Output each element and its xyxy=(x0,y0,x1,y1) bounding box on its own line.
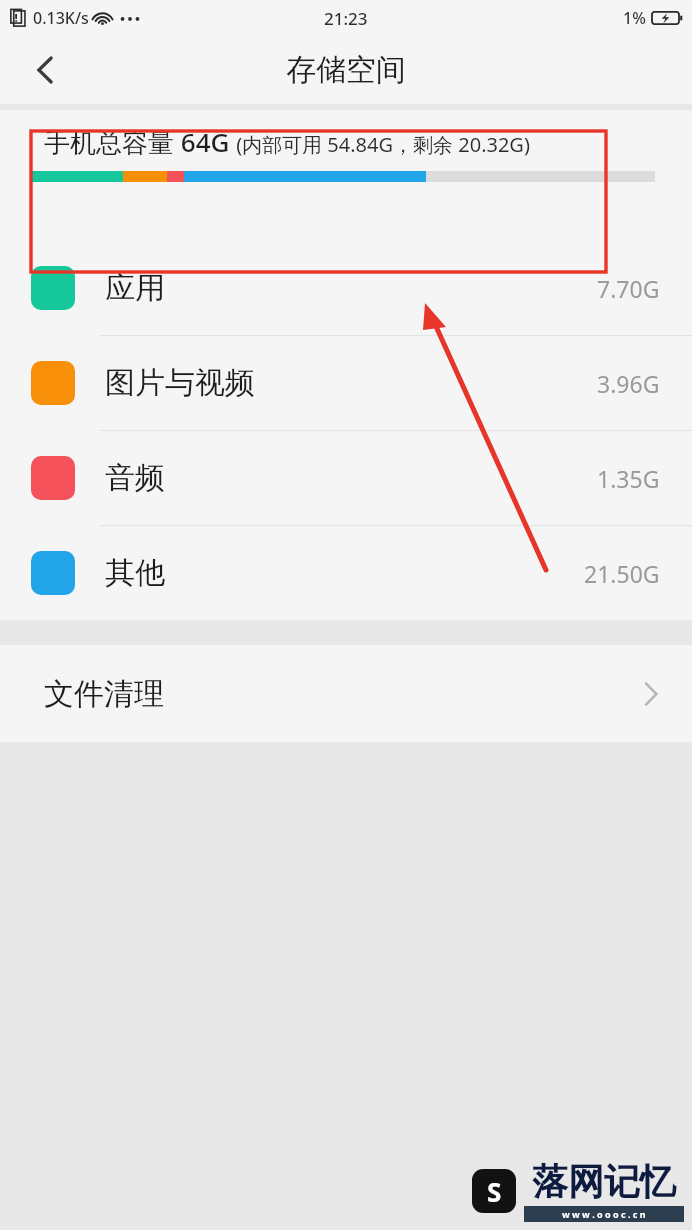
staticText: 3.96G xyxy=(597,368,660,399)
staticText: 21:23 xyxy=(324,7,368,30)
staticText: 21.50G xyxy=(584,558,660,589)
staticText: 1.35G xyxy=(597,463,660,494)
staticText: 图片与视频 xyxy=(105,364,255,402)
button[interactable]: 应用 xyxy=(0,241,692,335)
staticText: 存储空间 xyxy=(286,51,406,89)
staticText: 1% xyxy=(623,7,646,29)
staticText: 其他 xyxy=(105,554,165,592)
button[interactable]: Back xyxy=(16,41,74,99)
button[interactable]: 其他 xyxy=(0,526,692,620)
staticText: 音频 xyxy=(105,459,165,497)
staticText: S xyxy=(487,1174,502,1209)
staticText: 应用 xyxy=(105,269,165,307)
staticText: 7.70G xyxy=(597,273,660,304)
staticText: 文件清理 xyxy=(44,675,164,713)
button[interactable]: 音频 xyxy=(0,431,692,525)
staticText: w w w . o o o c . c n xyxy=(562,1208,646,1220)
staticText: 手机总容量 64G (内部可用 54.84G，剩余 20.32G) xyxy=(44,124,530,160)
button[interactable]: 图片与视频 xyxy=(0,336,692,430)
staticText: 落网记忆 xyxy=(532,1159,676,1204)
staticText: 0.13K/s xyxy=(33,7,89,29)
button[interactable]: 文件清理 xyxy=(0,645,692,742)
